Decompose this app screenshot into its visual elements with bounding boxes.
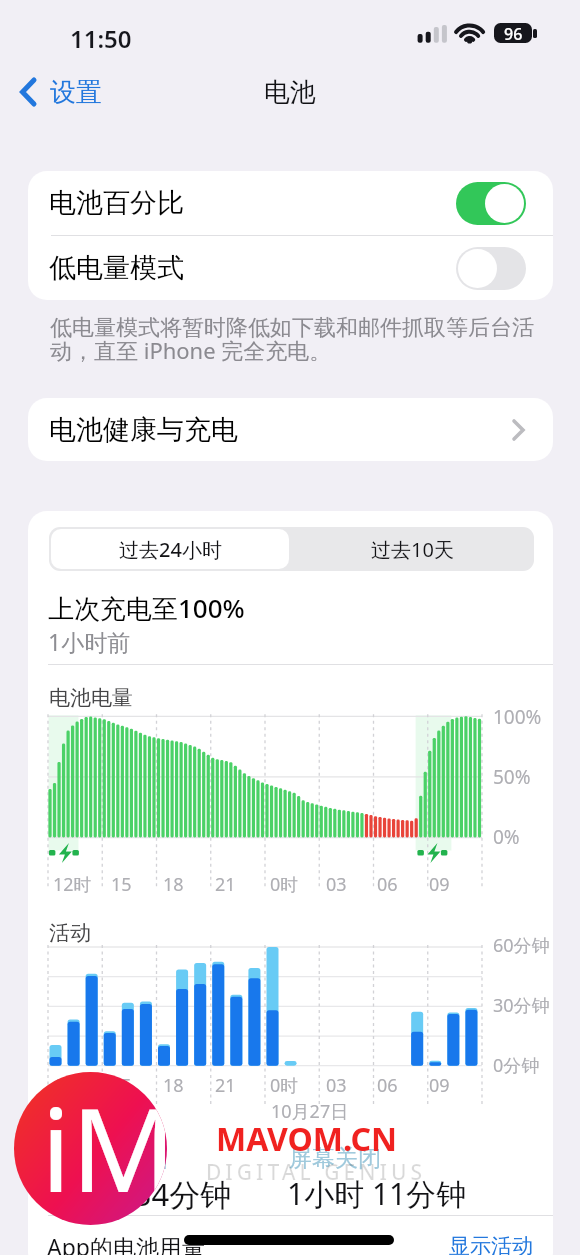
staticText: 100% bbox=[493, 704, 542, 730]
staticText: 低电量模式 bbox=[49, 251, 184, 285]
staticText: 过去10天 bbox=[371, 536, 454, 563]
button[interactable]: App的电池用量 bbox=[28, 1216, 553, 1255]
staticText: 03 bbox=[326, 1073, 347, 1098]
staticText: 18 bbox=[163, 872, 184, 897]
button[interactable]: 电池百分比 bbox=[28, 171, 553, 235]
staticText: 电池电量 bbox=[49, 685, 133, 711]
staticText: 屏幕开启 bbox=[76, 1144, 168, 1173]
staticText: 3小时34分钟 bbox=[54, 1173, 232, 1215]
staticText: 21 bbox=[215, 1073, 236, 1098]
staticText: MAVOM.CN bbox=[216, 1117, 397, 1161]
staticText: 1小时前 bbox=[48, 626, 131, 657]
button[interactable]: 过去24小时 bbox=[51, 529, 289, 569]
button[interactable]: 过去10天 bbox=[291, 527, 534, 571]
staticText: 12时 bbox=[53, 1073, 92, 1098]
staticText: 03 bbox=[326, 872, 347, 897]
staticText: 0% bbox=[493, 824, 520, 850]
staticText: 09 bbox=[429, 872, 450, 897]
staticText: 显示活动 bbox=[449, 1233, 533, 1255]
staticText: 30分钟 bbox=[493, 993, 550, 1018]
button[interactable]: 设置 bbox=[8, 64, 128, 120]
button[interactable]: 低电量模式 bbox=[28, 236, 553, 300]
staticText: 过去24小时 bbox=[119, 536, 222, 563]
staticText: iM bbox=[41, 1072, 167, 1221]
button[interactable]: 电池健康与充电 bbox=[28, 398, 553, 461]
staticText: 06 bbox=[377, 1073, 398, 1098]
staticText: 50% bbox=[493, 764, 531, 790]
staticText: 电池百分比 bbox=[49, 186, 184, 220]
staticText: 11:50 bbox=[70, 22, 132, 55]
staticText: 09 bbox=[429, 1073, 450, 1098]
staticText: 设置 bbox=[50, 76, 102, 109]
staticText: 21 bbox=[215, 872, 236, 897]
staticText: 低电量模式将暂时降低如下载和邮件抓取等后台活 动，直至 iPhone 完全充电。 bbox=[50, 314, 534, 366]
staticText: 15 bbox=[111, 1073, 132, 1098]
staticText: 活动 bbox=[49, 920, 91, 946]
staticText: 0时 bbox=[270, 1073, 299, 1098]
staticText: 屏幕关闭 bbox=[289, 1144, 381, 1173]
staticText: 96 bbox=[504, 23, 523, 43]
staticText: 10月27日 bbox=[271, 1099, 349, 1124]
staticText: 电池 bbox=[264, 76, 316, 109]
staticText: 18 bbox=[163, 1073, 184, 1098]
staticText: 电池健康与充电 bbox=[49, 413, 238, 447]
staticText: 06 bbox=[377, 872, 398, 897]
staticText: 0时 bbox=[270, 872, 299, 897]
staticText: 15 bbox=[111, 872, 132, 897]
staticText: DIGITAL GENIUS bbox=[206, 1158, 426, 1187]
staticText: App的电池用量 bbox=[47, 1231, 205, 1255]
staticText: 60分钟 bbox=[493, 933, 550, 958]
staticText: 上次充电至100% bbox=[48, 590, 245, 626]
staticText: 12时 bbox=[53, 872, 92, 897]
staticText: 0分钟 bbox=[493, 1053, 540, 1078]
staticText: 1小时 11分钟 bbox=[287, 1173, 467, 1214]
